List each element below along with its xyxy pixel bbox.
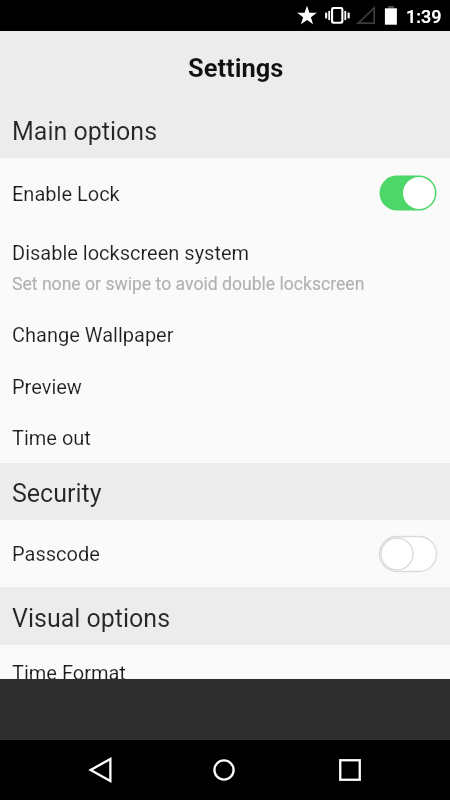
staticText: Change Wallpaper	[12, 323, 174, 346]
staticText: Set none or swipe to avoid double locksc…	[12, 274, 365, 295]
button[interactable]: Change Wallpaper	[0, 308, 450, 360]
button[interactable]: Back	[70, 740, 130, 800]
staticText: Settings	[188, 53, 284, 83]
button[interactable]: Disable lockscreen system	[0, 228, 450, 308]
button[interactable]: Passcode	[0, 520, 450, 587]
staticText: Disable lockscreen system	[12, 241, 250, 264]
button[interactable]: Switch on	[379, 175, 437, 211]
button[interactable]: Preview	[0, 360, 450, 412]
button[interactable]: Enable Lock	[0, 158, 450, 228]
staticText: Time Format	[12, 661, 126, 679]
staticText: Passcode	[12, 542, 379, 565]
button[interactable]: Recent apps	[320, 740, 380, 800]
staticText: 1:39	[406, 6, 442, 27]
staticText: Enable Lock	[12, 182, 379, 205]
staticText: Visual options	[12, 604, 171, 633]
staticText: Security	[12, 479, 102, 508]
button[interactable]: Time Format	[0, 645, 450, 679]
button[interactable]: Switch off	[379, 536, 437, 572]
staticText: Time out	[12, 426, 91, 449]
staticText: Preview	[12, 375, 82, 398]
button[interactable]: Time out	[0, 412, 450, 463]
staticText: Main options	[12, 117, 158, 146]
button[interactable]: Home	[194, 740, 254, 800]
